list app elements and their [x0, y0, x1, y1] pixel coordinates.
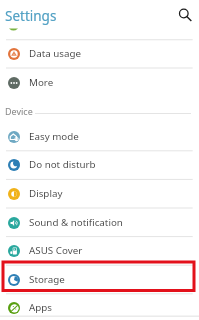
button[interactable]: Apps [0, 293, 199, 320]
staticText: More [29, 76, 54, 89]
staticText: Data usage [29, 47, 82, 60]
button[interactable]: Sound & notification [0, 208, 199, 237]
button[interactable]: More [0, 68, 199, 97]
button[interactable]: Search [173, 3, 194, 24]
staticText: Storage [29, 273, 65, 286]
staticText: Device [5, 105, 33, 117]
staticText: Easy mode [29, 130, 79, 143]
staticText: Display [29, 187, 63, 200]
button[interactable]: Data usage [0, 39, 199, 68]
staticText: Apps [29, 301, 53, 314]
button[interactable]: Display [0, 179, 199, 208]
staticText: Settings [5, 7, 57, 25]
staticText: Do not disturb [29, 158, 96, 171]
button[interactable]: Easy mode [0, 122, 199, 151]
button[interactable]: Do not disturb [0, 150, 199, 179]
button[interactable]: ASUS Cover [0, 236, 199, 265]
staticText: Sound & notification [29, 216, 123, 229]
button[interactable]: Storage [0, 265, 199, 294]
staticText: ASUS Cover [29, 244, 83, 257]
